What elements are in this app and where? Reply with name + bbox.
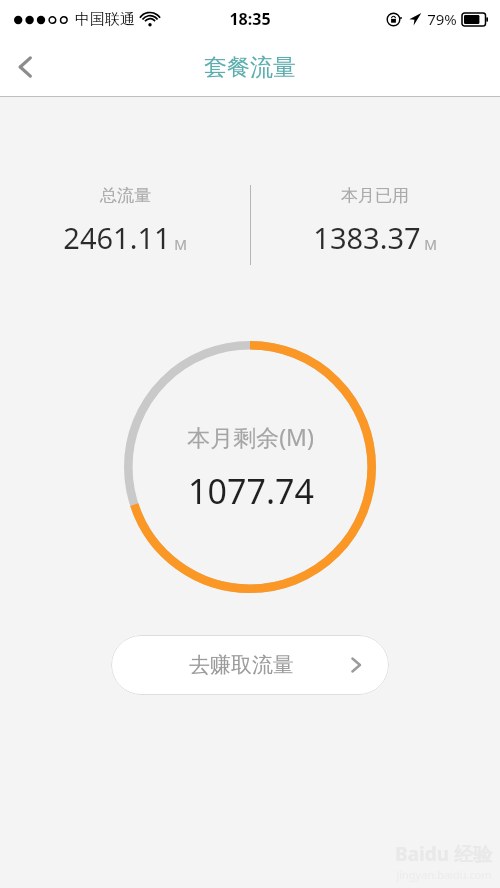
staticText: 总流量 [100, 185, 151, 206]
staticText: 1077.74 [188, 468, 314, 514]
staticText: 中国联通 [75, 10, 135, 29]
staticText: 套餐流量 [204, 53, 296, 82]
staticText: Baidu 经验 [395, 841, 492, 867]
staticText: M [174, 235, 187, 254]
staticText: M [424, 235, 437, 254]
staticText: 本月已用 [341, 185, 409, 206]
staticText: 18:35 [229, 8, 271, 30]
staticText: 本月剩余(M) [187, 421, 314, 452]
button[interactable]: Back [0, 41, 52, 93]
staticText: 79% [427, 9, 457, 29]
staticText: 1383.37 [313, 218, 421, 257]
staticText: 2461.11 [63, 218, 171, 257]
button[interactable]: 去赚取流量 [111, 635, 389, 695]
staticText: 去赚取流量 [189, 652, 294, 678]
